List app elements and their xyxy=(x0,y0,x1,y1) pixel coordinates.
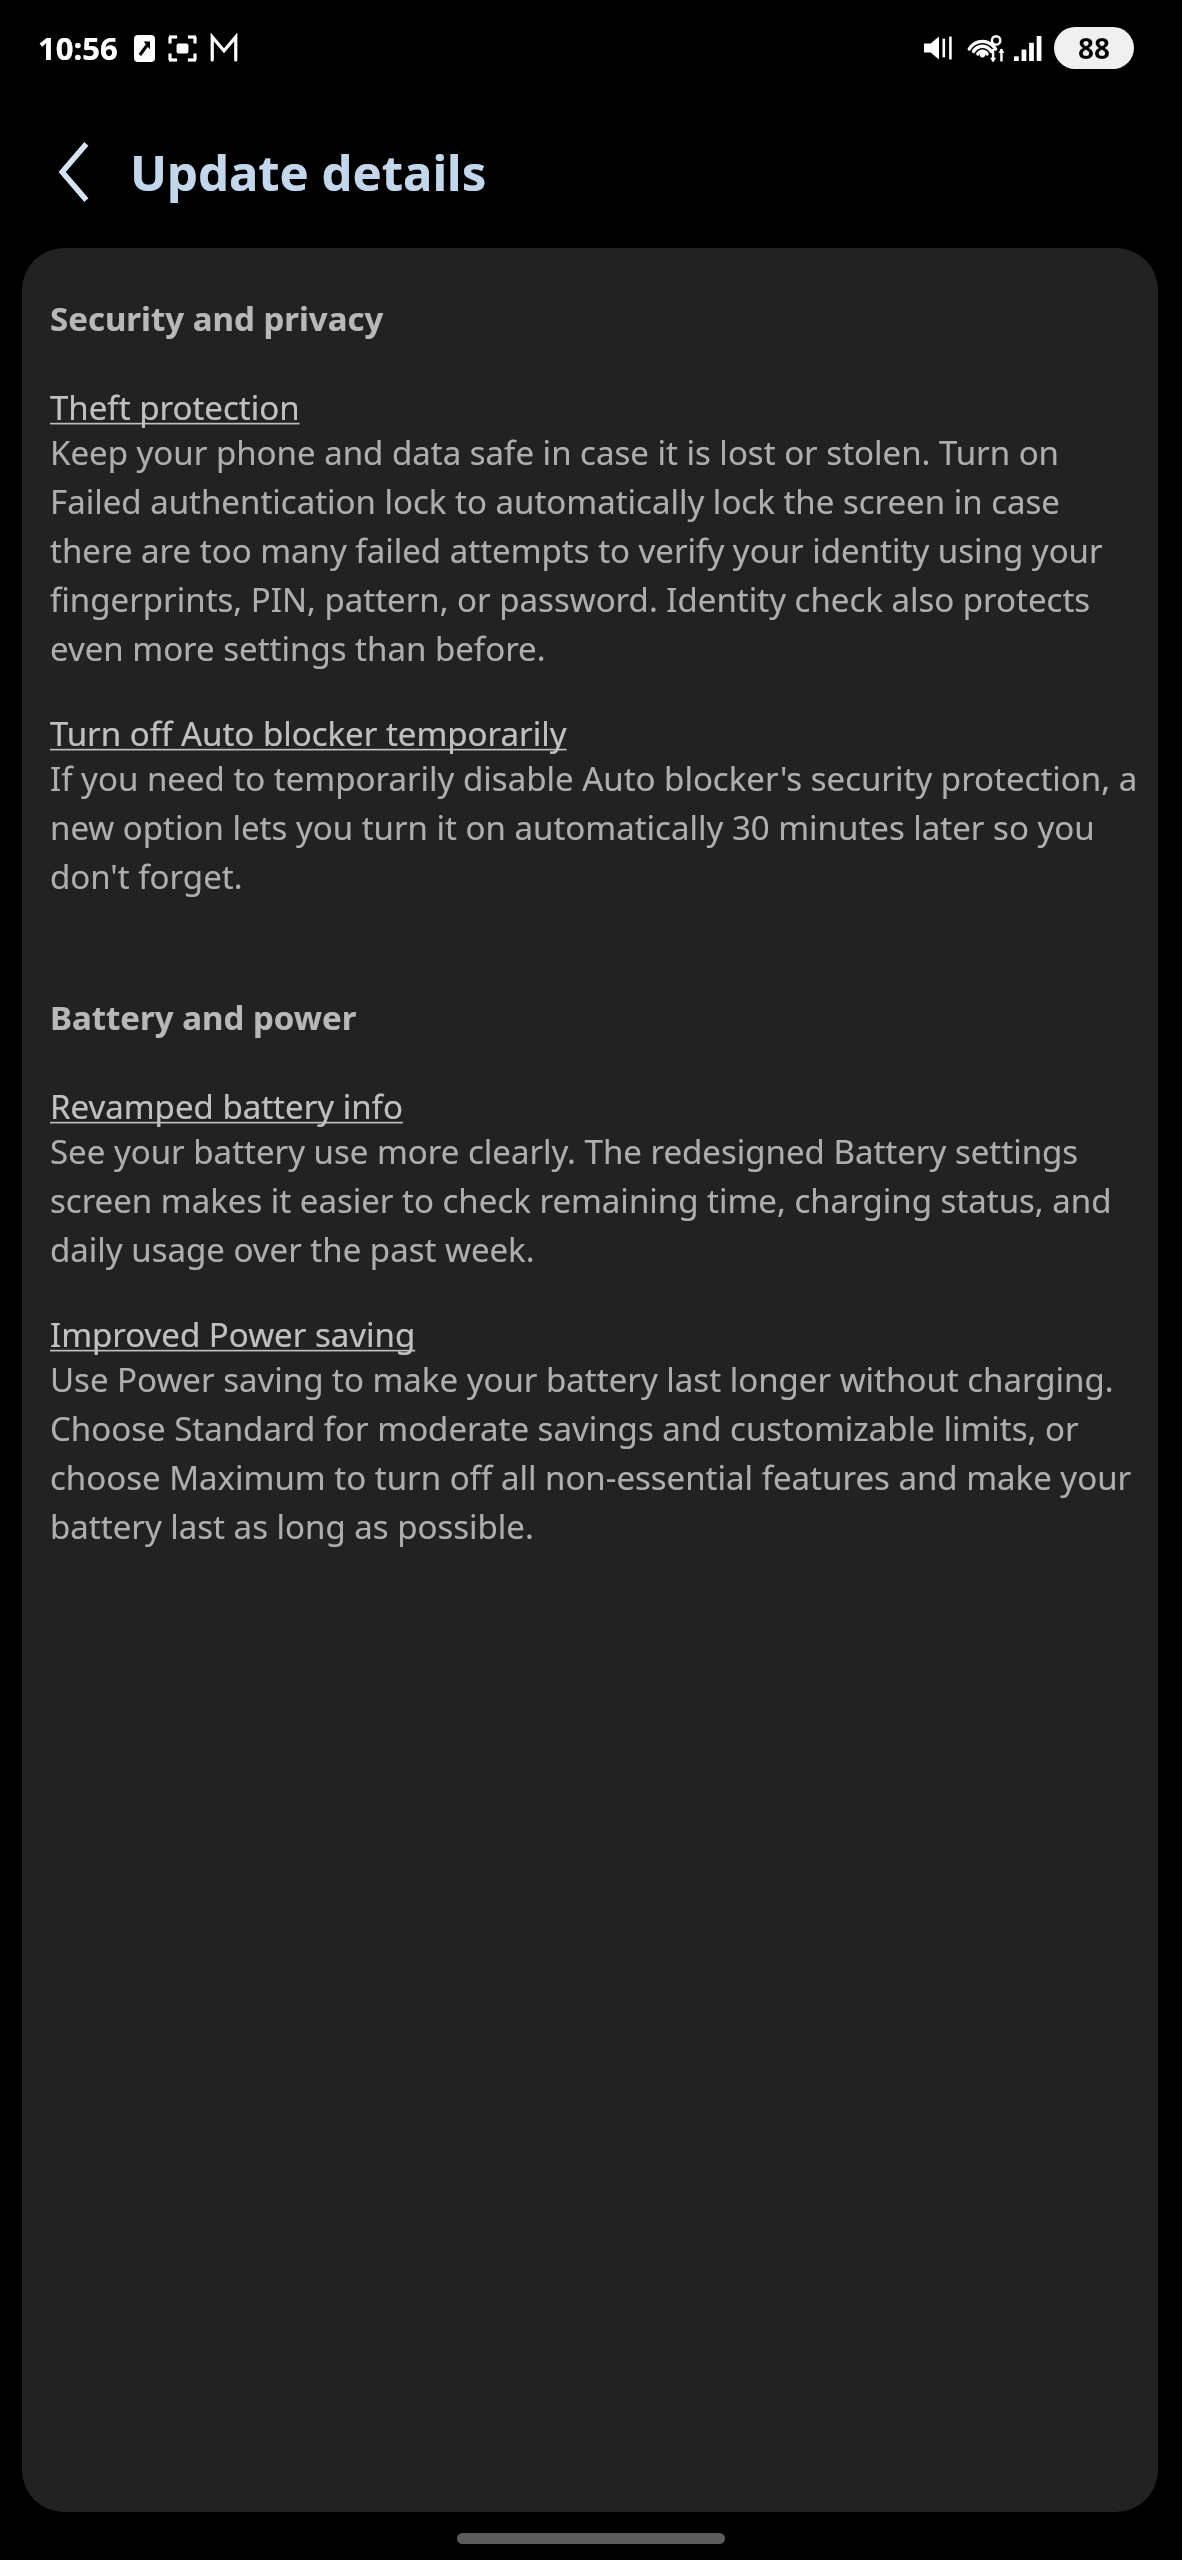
staticText: See your battery use more clearly. The r… xyxy=(50,1129,1140,1272)
button[interactable]: Back xyxy=(36,133,114,211)
staticText: Theft protection xyxy=(50,385,300,430)
staticText: Keep your phone and data safe in case it… xyxy=(50,430,1140,671)
staticText: Use Power saving to make your battery la… xyxy=(50,1357,1140,1549)
staticText: Update details xyxy=(130,139,487,206)
button[interactable]: Theft protection xyxy=(50,385,300,430)
staticText: Turn off Auto blocker temporarily xyxy=(50,711,567,756)
staticText: 10:56 xyxy=(38,27,118,69)
button[interactable]: Turn off Auto blocker temporarily xyxy=(50,711,567,756)
staticText: Battery and power xyxy=(50,995,357,1040)
staticText: Security and privacy xyxy=(50,296,384,341)
staticText: Improved Power saving xyxy=(50,1312,416,1357)
staticText: If you need to temporarily disable Auto … xyxy=(50,756,1140,899)
button[interactable]: Revamped battery info xyxy=(50,1084,403,1129)
staticText: 88 xyxy=(1078,29,1111,67)
button[interactable]: Improved Power saving xyxy=(50,1312,416,1357)
staticText: Revamped battery info xyxy=(50,1084,403,1129)
